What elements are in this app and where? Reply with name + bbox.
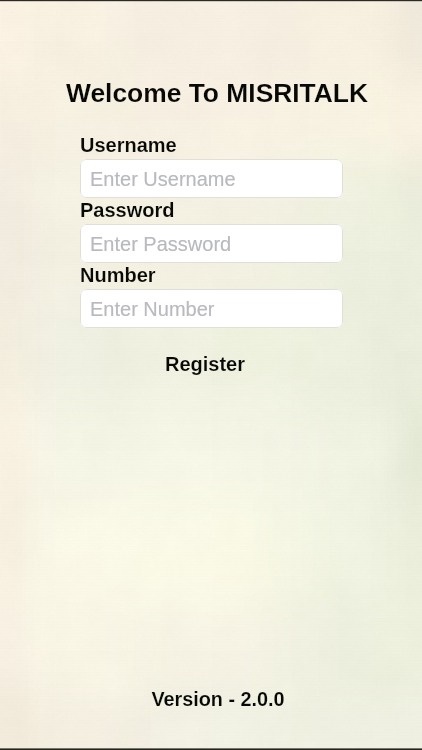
staticText: Register (165, 353, 246, 375)
staticText: Number (80, 264, 156, 286)
staticText: Password (80, 199, 175, 221)
button[interactable]: Enter Password (80, 224, 343, 263)
staticText: Welcome To MISRITALK (6, 78, 422, 107)
staticText: Version - 2.0.0 (7, 688, 422, 710)
staticText: Enter Password (90, 233, 232, 255)
staticText: Username (80, 134, 177, 156)
button[interactable]: Enter Username (80, 159, 343, 198)
button[interactable]: Register (143, 346, 268, 382)
button[interactable]: Enter Number (80, 289, 343, 328)
staticText: Enter Username (90, 168, 236, 190)
staticText: Enter Number (90, 298, 215, 320)
